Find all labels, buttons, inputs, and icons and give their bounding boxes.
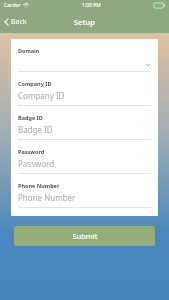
staticText: Company ID (18, 90, 65, 101)
staticText: Carrier (4, 2, 21, 9)
staticText: Submit (72, 231, 98, 241)
other: Open domain dropdown (145, 62, 151, 68)
button[interactable]: Phone Number (18, 182, 151, 208)
staticText: Back (11, 17, 27, 27)
button[interactable]: Password (18, 148, 151, 174)
staticText: Company ID (18, 80, 52, 87)
button[interactable]: Domain (18, 47, 151, 72)
staticText: Domain (18, 47, 40, 54)
staticText: Password (18, 148, 45, 155)
button[interactable]: Badge ID (18, 114, 151, 140)
staticText: Badge ID (18, 114, 43, 121)
staticText: 1:05 PM (82, 2, 101, 9)
staticText: Password (18, 158, 55, 169)
button[interactable]: Company ID (18, 80, 151, 106)
staticText: Phone Number (18, 192, 76, 203)
button[interactable]: Submit (14, 226, 155, 246)
staticText: Setup (74, 17, 96, 27)
staticText: Badge ID (18, 124, 53, 135)
button[interactable]: Back (0, 14, 33, 30)
staticText: Phone Number (18, 182, 60, 189)
